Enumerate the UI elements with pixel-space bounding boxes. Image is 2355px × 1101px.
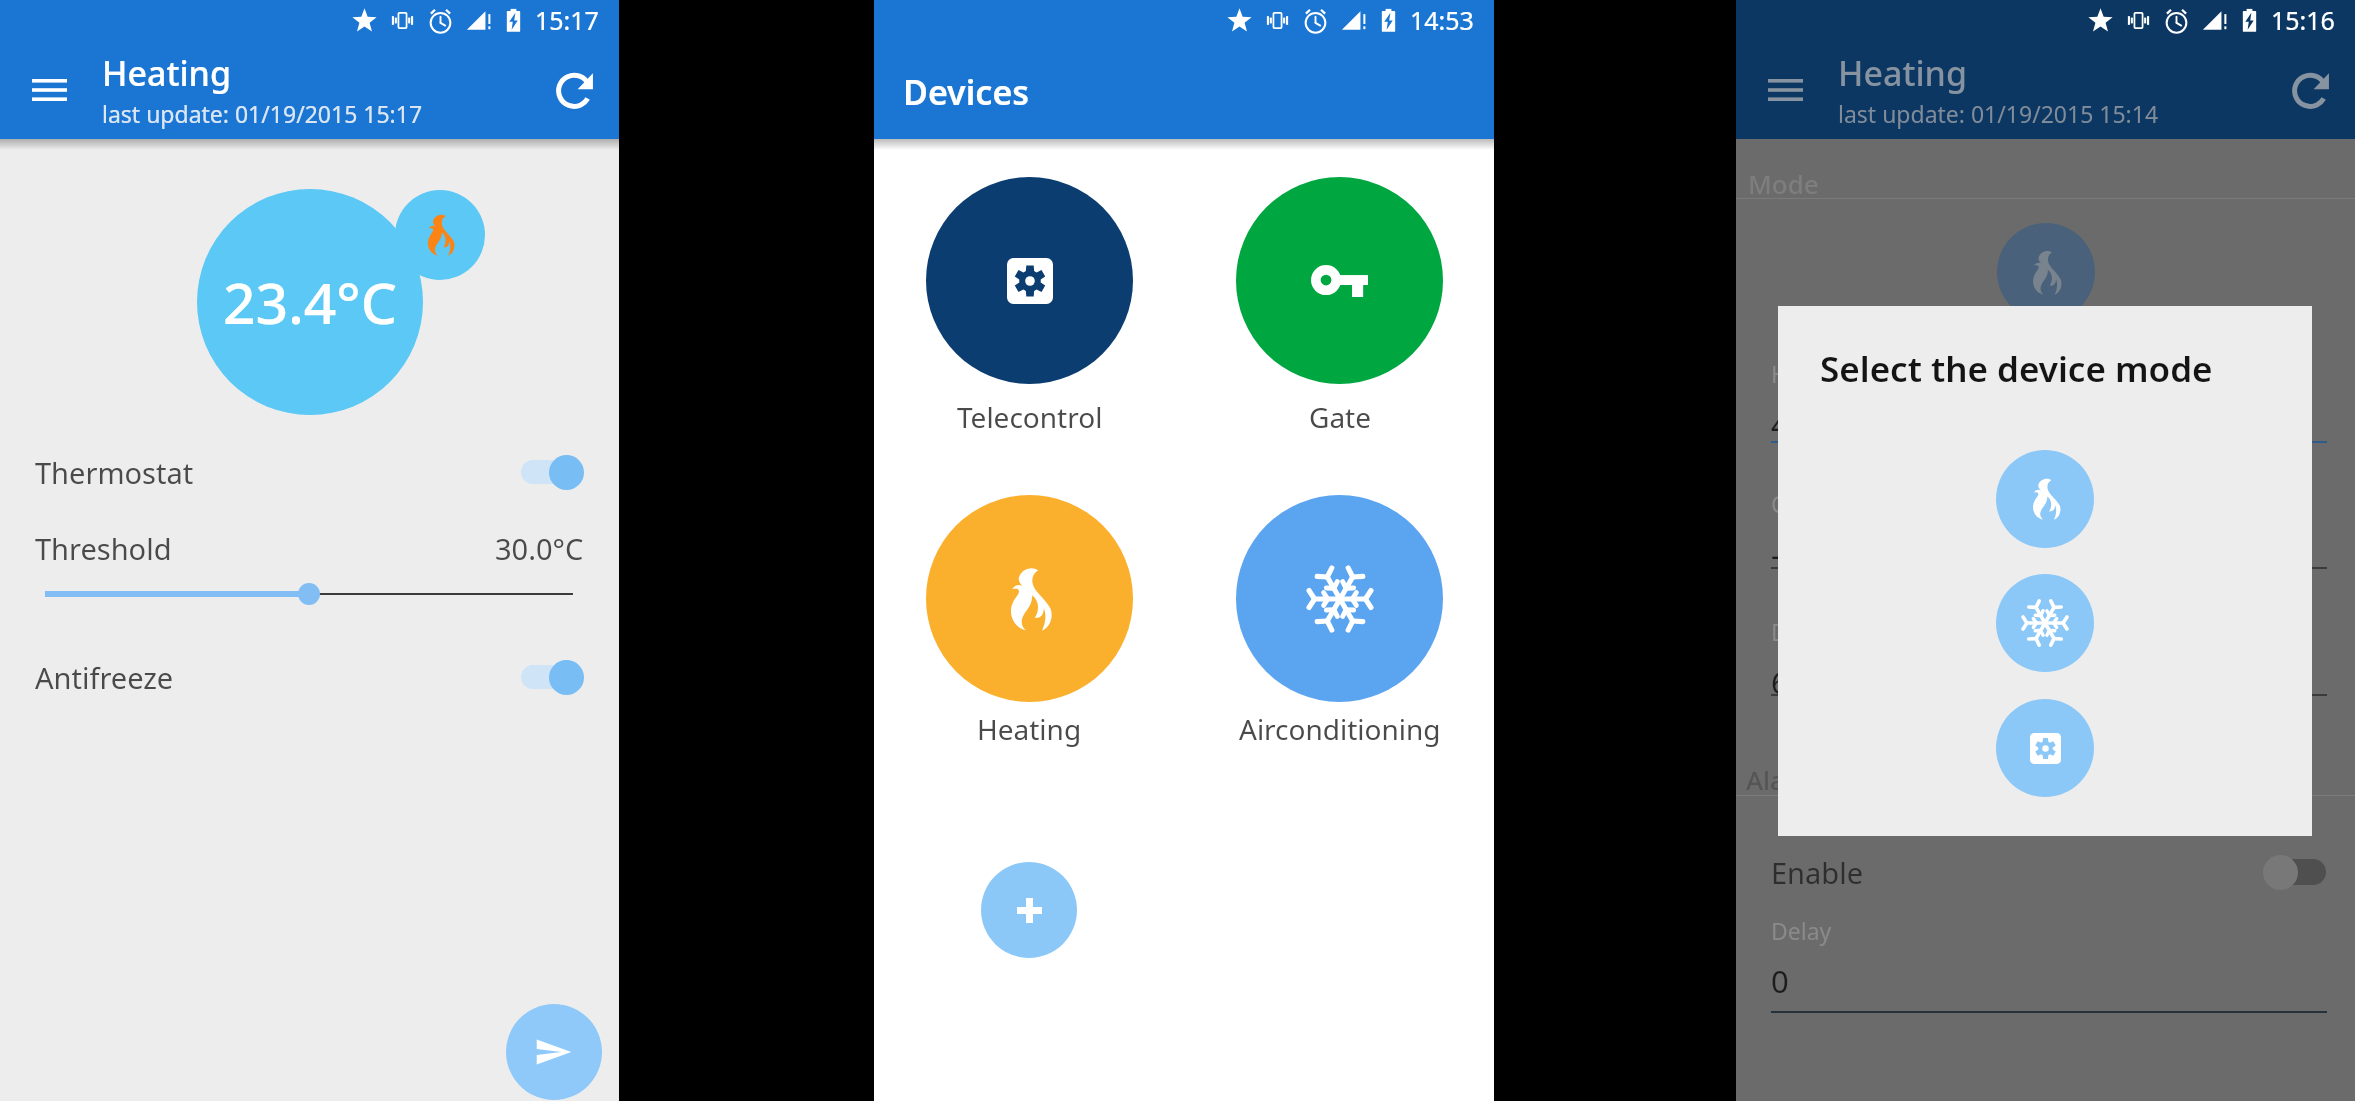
staticText: Select the device mode [1820,345,2213,393]
staticText: Thermostat [35,453,194,492]
staticText: Gate [1309,398,1371,436]
button[interactable]: Cooling mode [1996,574,2094,672]
staticText: Enable [1771,853,1863,892]
staticText: 15:16 [2271,3,2335,37]
button[interactable]: Enable [1736,842,2355,902]
staticText: Heating [977,710,1082,748]
button[interactable]: Manual mode [1996,699,2094,797]
button[interactable]: Refresh [549,62,605,118]
staticText: D [1771,616,1788,647]
staticText: Ala [1746,762,1785,797]
staticText: Airconditioning [1239,710,1441,748]
staticText: 30.0°C [495,529,584,568]
button[interactable]: Thermostat [0,442,619,502]
staticText: 0 [1771,960,1789,1002]
staticText: Telecontrol [957,398,1103,436]
button[interactable]: Airconditioning [1236,495,1443,702]
button[interactable]: Open navigation drawer [24,65,74,115]
staticText: 15:17 [535,3,599,37]
button[interactable]: Add device [981,862,1077,958]
button[interactable]: Refresh [2285,62,2341,118]
button[interactable]: Heating mode [1996,450,2094,548]
staticText: C [1771,488,1786,519]
staticText: Heating [102,50,231,96]
button[interactable]: Airconditioning [1239,710,1441,748]
button[interactable] [0,574,619,614]
staticText: last update: 01/19/2015 15:14 [1838,98,2159,129]
button[interactable]: Threshold [0,518,619,578]
staticText: Antifreeze [35,658,174,697]
staticText: Delay [1771,915,1832,946]
button[interactable]: Gate [1309,398,1371,436]
staticText: H [1771,358,1789,389]
button[interactable]: Open navigation drawer [1760,65,1810,115]
button[interactable]: Antifreeze [0,647,619,707]
button[interactable]: Send [506,1004,602,1100]
staticText: Devices [903,69,1030,115]
button[interactable]: Telecontrol [957,398,1103,436]
staticText: last update: 01/19/2015 15:17 [102,98,423,129]
staticText: 14:53 [1410,3,1474,37]
button[interactable]: Heating [977,710,1082,748]
staticText: Threshold [35,529,172,568]
staticText: 4 [1771,403,1789,445]
staticText: Heating [1838,50,1967,96]
button[interactable]: Telecontrol [926,177,1133,384]
staticText: 6 [1771,661,1789,703]
button[interactable]: Heating [926,495,1133,702]
staticText: 23.4°C [223,263,397,341]
staticText: - [1771,533,1781,575]
button[interactable]: Gate [1236,177,1443,384]
staticText: Mode [1748,166,1819,201]
